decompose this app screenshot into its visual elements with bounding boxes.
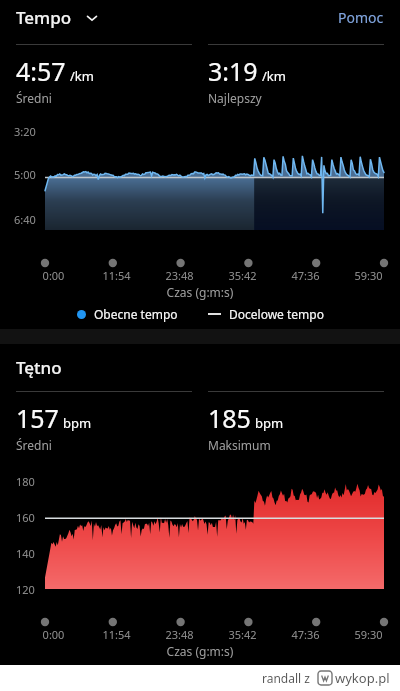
button[interactable]: Pomoc bbox=[338, 8, 384, 27]
staticText: randall z bbox=[262, 670, 310, 686]
staticText: Obecne tempo bbox=[94, 306, 178, 322]
staticText: 3:19 bbox=[208, 54, 258, 88]
staticText: 47:36 bbox=[274, 627, 337, 642]
staticText: 6:40 bbox=[14, 212, 36, 227]
staticText: 11:54 bbox=[85, 627, 148, 642]
staticText: 5:00 bbox=[14, 167, 36, 182]
staticText: bpm bbox=[255, 414, 284, 432]
staticText: Tempo bbox=[16, 6, 72, 29]
button[interactable]: Obecne tempo bbox=[77, 306, 178, 322]
staticText: 0:00 bbox=[22, 268, 85, 283]
staticText: 35:42 bbox=[211, 627, 274, 642]
staticText: 23:48 bbox=[148, 268, 211, 283]
staticText: 35:42 bbox=[211, 268, 274, 283]
staticText: bpm bbox=[63, 414, 92, 432]
button[interactable]: Docelowe tempo bbox=[208, 306, 324, 322]
other: Zmień metrykę bbox=[84, 10, 100, 26]
staticText: 157 bbox=[16, 401, 59, 435]
staticText: 185 bbox=[208, 401, 251, 435]
staticText: 11:54 bbox=[85, 268, 148, 283]
staticText: Średni bbox=[16, 437, 52, 453]
staticText: Maksimum bbox=[208, 437, 271, 453]
staticText: 4:57 bbox=[16, 54, 66, 88]
staticText: wykop.pl bbox=[335, 669, 390, 687]
staticText: Pomoc bbox=[338, 8, 384, 27]
staticText: Średni bbox=[16, 90, 52, 106]
staticText: /km bbox=[70, 67, 94, 85]
staticText: 0:00 bbox=[22, 627, 85, 642]
staticText: 160 bbox=[16, 510, 35, 525]
staticText: Czas (g:m:s) bbox=[0, 284, 400, 300]
staticText: 23:48 bbox=[148, 627, 211, 642]
button[interactable]: Tempo bbox=[16, 6, 100, 29]
staticText: 59:30 bbox=[337, 627, 400, 642]
staticText: 140 bbox=[16, 546, 35, 561]
staticText: Tętno bbox=[16, 356, 62, 379]
button[interactable]: Tętno bbox=[16, 356, 62, 379]
staticText: /km bbox=[262, 67, 286, 85]
staticText: Najlepszy bbox=[208, 90, 262, 106]
staticText: 120 bbox=[16, 582, 35, 597]
staticText: 180 bbox=[16, 474, 35, 489]
staticText: 59:30 bbox=[337, 268, 400, 283]
staticText: 3:20 bbox=[14, 124, 36, 139]
staticText: Czas (g:m:s) bbox=[0, 643, 400, 659]
staticText: Docelowe tempo bbox=[229, 306, 324, 322]
staticText: 47:36 bbox=[274, 268, 337, 283]
